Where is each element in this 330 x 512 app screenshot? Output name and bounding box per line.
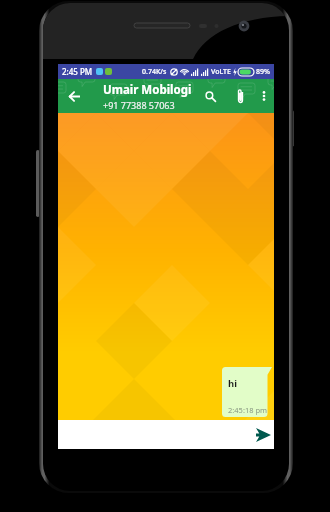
button[interactable]: Back bbox=[62, 79, 86, 113]
staticText: 2:45 PM bbox=[62, 66, 93, 77]
button[interactable]: More options bbox=[254, 79, 274, 113]
staticText: Umair Mobilogi bbox=[103, 82, 192, 98]
staticText: 0.74K/s bbox=[142, 67, 167, 77]
staticText: 89% bbox=[256, 67, 270, 77]
button[interactable]: Send bbox=[253, 425, 273, 445]
button[interactable]: Search bbox=[199, 79, 221, 113]
staticText: hi bbox=[228, 377, 238, 390]
staticText: +91 77388 57063 bbox=[103, 99, 175, 111]
button[interactable]: Attach bbox=[230, 79, 251, 113]
staticText: VoLTE bbox=[211, 67, 231, 77]
staticText: 2:45:18 pm bbox=[228, 405, 268, 415]
